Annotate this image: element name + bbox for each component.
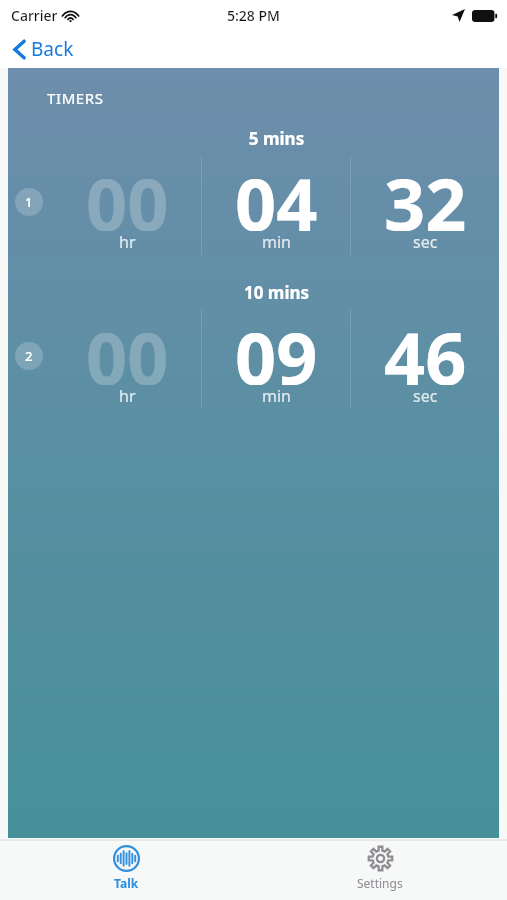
staticText: Settings bbox=[357, 875, 403, 891]
staticText: 32 bbox=[384, 154, 467, 231]
staticText: sec bbox=[413, 385, 438, 407]
staticText: Back bbox=[31, 36, 74, 62]
staticText: Carrier bbox=[11, 6, 58, 25]
staticText: TIMERS bbox=[47, 88, 104, 108]
staticText: 5:28 PM bbox=[227, 6, 280, 25]
staticText: Talk bbox=[114, 875, 139, 891]
staticText: 00 bbox=[86, 308, 169, 385]
staticText: 1 bbox=[25, 193, 33, 211]
staticText: 10 mins bbox=[54, 281, 499, 304]
button[interactable]: Back bbox=[0, 30, 88, 68]
staticText: min bbox=[262, 231, 291, 253]
button[interactable]: Settings bbox=[335, 841, 425, 895]
staticText: hr bbox=[119, 385, 136, 407]
staticText: min bbox=[262, 385, 291, 407]
staticText: 5 mins bbox=[54, 127, 499, 150]
staticText: sec bbox=[413, 231, 438, 253]
button[interactable]: 5 mins bbox=[8, 127, 499, 257]
button[interactable]: Talk bbox=[91, 841, 162, 895]
staticText: 2 bbox=[25, 347, 33, 365]
staticText: hr bbox=[119, 231, 136, 253]
button[interactable]: 10 mins bbox=[8, 281, 499, 411]
staticText: 00 bbox=[86, 154, 169, 231]
staticText: 46 bbox=[384, 308, 467, 385]
staticText: 09 bbox=[235, 308, 318, 385]
staticText: 04 bbox=[235, 154, 318, 231]
